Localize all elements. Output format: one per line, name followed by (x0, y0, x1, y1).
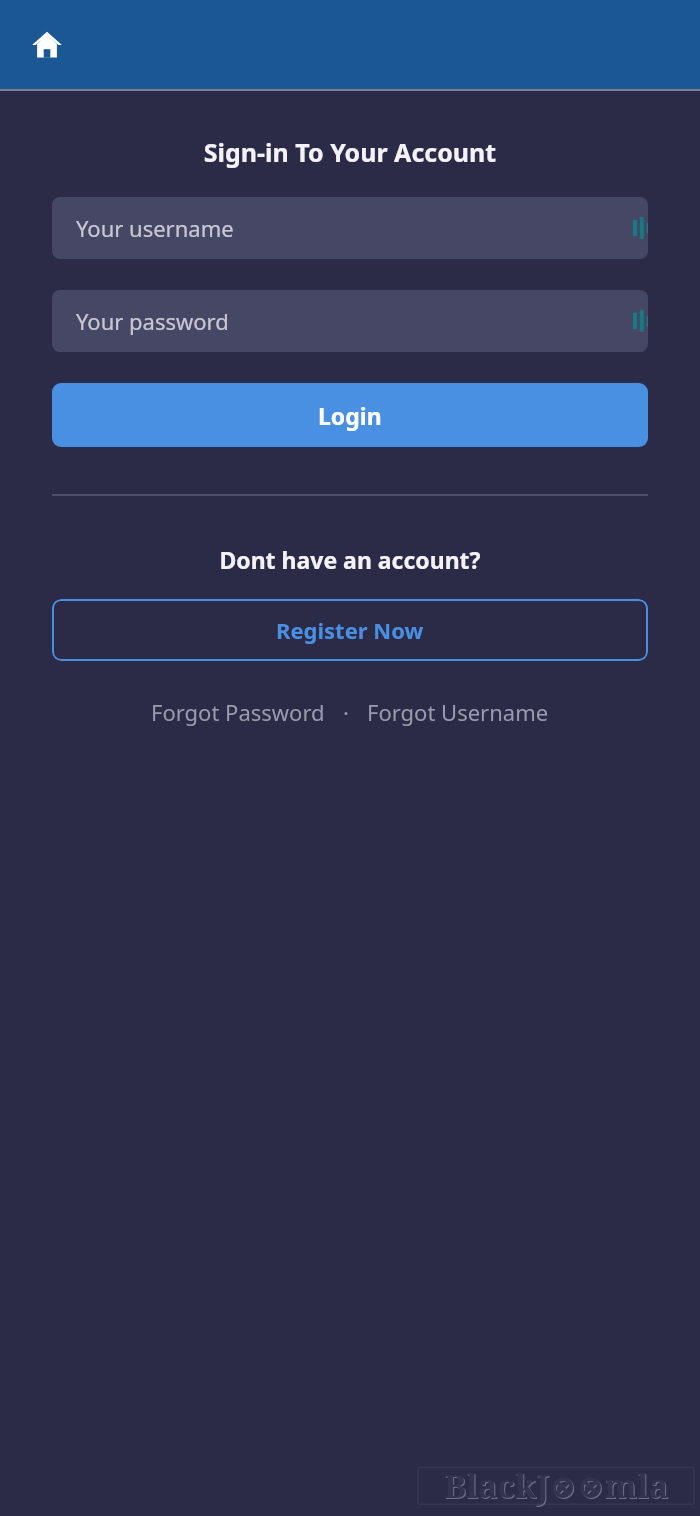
staticText: Dont have an account? (0, 544, 700, 575)
button[interactable]: Home (24, 22, 70, 68)
staticText: Forgot Password (151, 697, 325, 727)
staticText: Register Now (276, 615, 424, 645)
staticText: BlackJ⊗⊗mla (444, 1463, 669, 1508)
button[interactable]: Register Now (52, 599, 648, 661)
button[interactable]: Your password (52, 290, 648, 352)
button[interactable]: Login (52, 383, 648, 447)
staticText: Your password (76, 306, 229, 336)
staticText: Your username (76, 213, 234, 243)
staticText: Sign-in To Your Account (0, 135, 700, 169)
button[interactable]: Forgot Password (147, 693, 329, 731)
staticText: Forgot Username (367, 697, 549, 727)
staticText: · (343, 697, 349, 727)
staticText: BlackJ⊗⊗mla (445, 1464, 670, 1509)
button[interactable]: Your username (52, 197, 648, 259)
button[interactable]: Forgot Username (363, 693, 553, 731)
staticText: Login (318, 400, 382, 431)
